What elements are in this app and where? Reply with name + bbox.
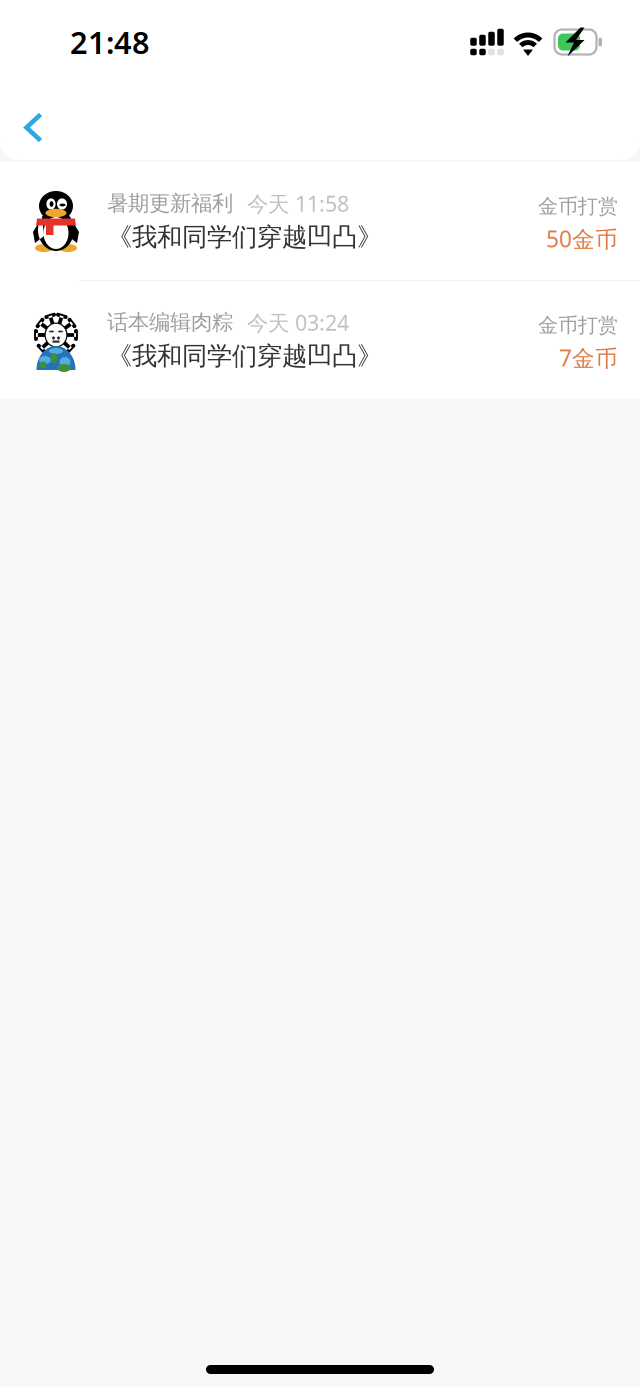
staticText: 今天 11:58	[247, 189, 349, 218]
staticText: 21:48	[70, 22, 150, 62]
button[interactable]: 话本编辑肉粽	[0, 281, 640, 399]
staticText: 50金币	[546, 224, 618, 254]
staticText: 金币打赏	[538, 313, 618, 338]
staticText: 暑期更新福利	[107, 190, 233, 216]
staticText: 话本编辑肉粽	[107, 309, 233, 335]
button[interactable]: 暑期更新福利	[0, 162, 640, 280]
staticText: 金币打赏	[538, 194, 618, 219]
staticText: 7金币	[559, 343, 618, 373]
button[interactable]: Back	[0, 84, 65, 160]
staticText: 今天 03:24	[247, 308, 349, 337]
staticText: 《我和同学们穿越凹凸》	[107, 341, 382, 372]
staticText: 《我和同学们穿越凹凸》	[107, 222, 382, 253]
